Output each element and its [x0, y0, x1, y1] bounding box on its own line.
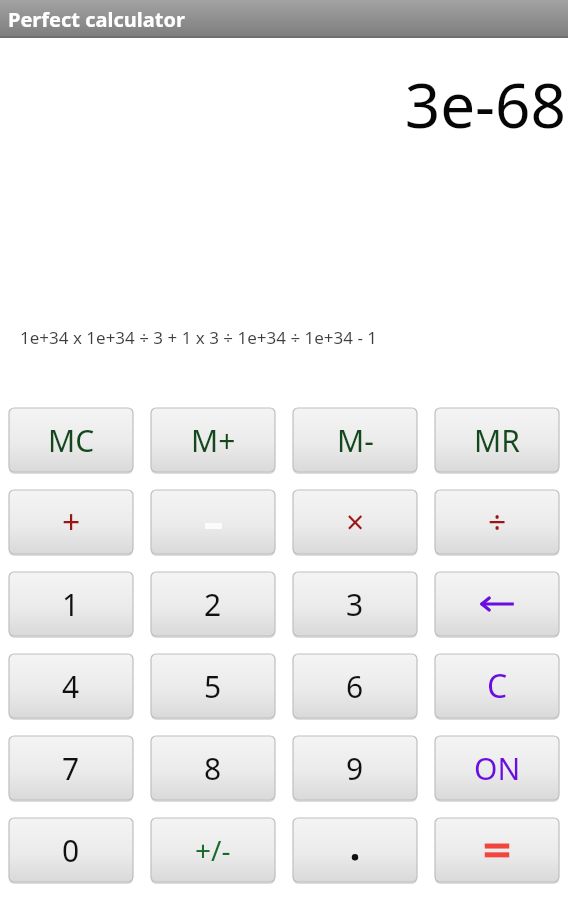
staticText: ON [474, 748, 521, 789]
button[interactable]: ÷ [435, 490, 559, 554]
staticText: MR [474, 420, 520, 461]
button[interactable]: ON [435, 736, 559, 800]
staticText: 2 [204, 584, 222, 625]
staticText: 3 [346, 584, 364, 625]
button[interactable] [293, 818, 417, 882]
button[interactable]: 1 [9, 572, 133, 636]
staticText: 1 [62, 584, 80, 625]
staticText: 7 [62, 748, 80, 789]
button[interactable]: 4 [9, 654, 133, 718]
button[interactable]: 7 [9, 736, 133, 800]
button[interactable]: 5 [151, 654, 275, 718]
staticText: 9 [346, 748, 364, 789]
button[interactable]: M+ [151, 408, 275, 472]
staticText: M- [337, 420, 374, 461]
button[interactable]: Backspace [435, 572, 559, 636]
button[interactable]: + [9, 490, 133, 554]
button[interactable]: M- [293, 408, 417, 472]
button[interactable]: MR [435, 408, 559, 472]
staticText: 6 [346, 666, 364, 707]
staticText: MC [48, 420, 95, 461]
staticText: + [62, 500, 81, 544]
button[interactable]: Minus [151, 490, 275, 554]
button[interactable]: 9 [293, 736, 417, 800]
staticText: +/- [195, 831, 231, 869]
staticText: Perfect calculator [8, 6, 185, 33]
button[interactable]: +/- [151, 818, 275, 882]
staticText: 5 [204, 666, 222, 707]
button[interactable] [435, 818, 559, 882]
staticText: × [346, 500, 365, 544]
staticText: M+ [191, 420, 236, 461]
button[interactable]: 8 [151, 736, 275, 800]
staticText: 8 [204, 748, 222, 789]
staticText: ÷ [488, 500, 507, 544]
button[interactable]: × [293, 490, 417, 554]
staticText: 0 [62, 830, 80, 871]
staticText: 1e+34 x 1e+34 ÷ 3 + 1 x 3 ÷ 1e+34 ÷ 1e+3… [20, 326, 378, 349]
staticText: C [487, 664, 508, 708]
staticText: 3e-68 [0, 62, 566, 146]
button[interactable]: 2 [151, 572, 275, 636]
staticText: 4 [62, 666, 80, 707]
button[interactable]: C [435, 654, 559, 718]
button[interactable]: 6 [293, 654, 417, 718]
button[interactable]: 3 [293, 572, 417, 636]
button[interactable]: 0 [9, 818, 133, 882]
button[interactable]: MC [9, 408, 133, 472]
